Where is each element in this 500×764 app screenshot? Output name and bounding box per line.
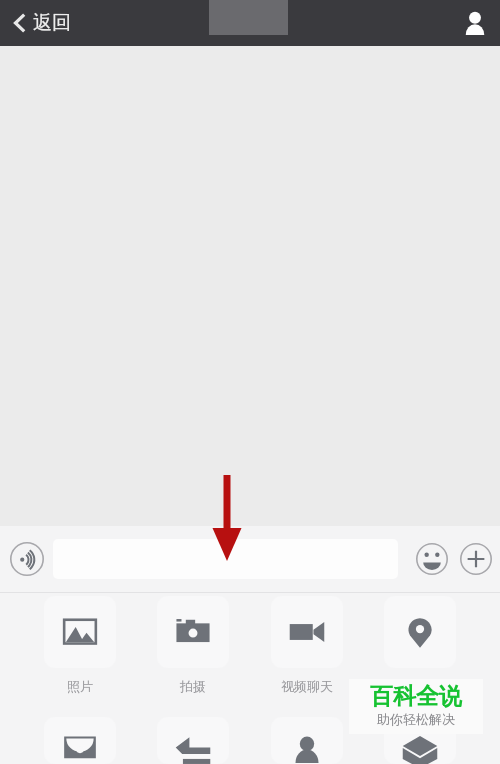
button[interactable]: 位置 (384, 596, 456, 700)
button[interactable]: Attachment option (44, 717, 116, 764)
button[interactable]: 照片 (44, 596, 116, 700)
button[interactable]: Contact profile (450, 3, 500, 43)
button[interactable]: 返回 (0, 5, 85, 41)
staticText: 助你轻松解决 (377, 711, 455, 727)
staticText: 照片 (67, 678, 93, 694)
staticText: 位置 (407, 678, 433, 694)
button[interactable]: More (456, 539, 496, 579)
button[interactable]: Attachment option (271, 717, 343, 764)
button[interactable]: Emoji (412, 539, 452, 579)
staticText: 百科全说 (370, 682, 462, 711)
button[interactable]: 视频聊天 (271, 596, 343, 700)
button[interactable] (53, 539, 398, 579)
button[interactable]: Voice input (6, 538, 48, 580)
staticText: 返回 (33, 11, 71, 35)
staticText: 拍摄 (180, 678, 206, 694)
button[interactable]: 拍摄 (157, 596, 229, 700)
button[interactable]: Attachment option (157, 717, 229, 764)
staticText: 视频聊天 (281, 678, 333, 694)
button[interactable]: Attachment option (384, 717, 456, 764)
